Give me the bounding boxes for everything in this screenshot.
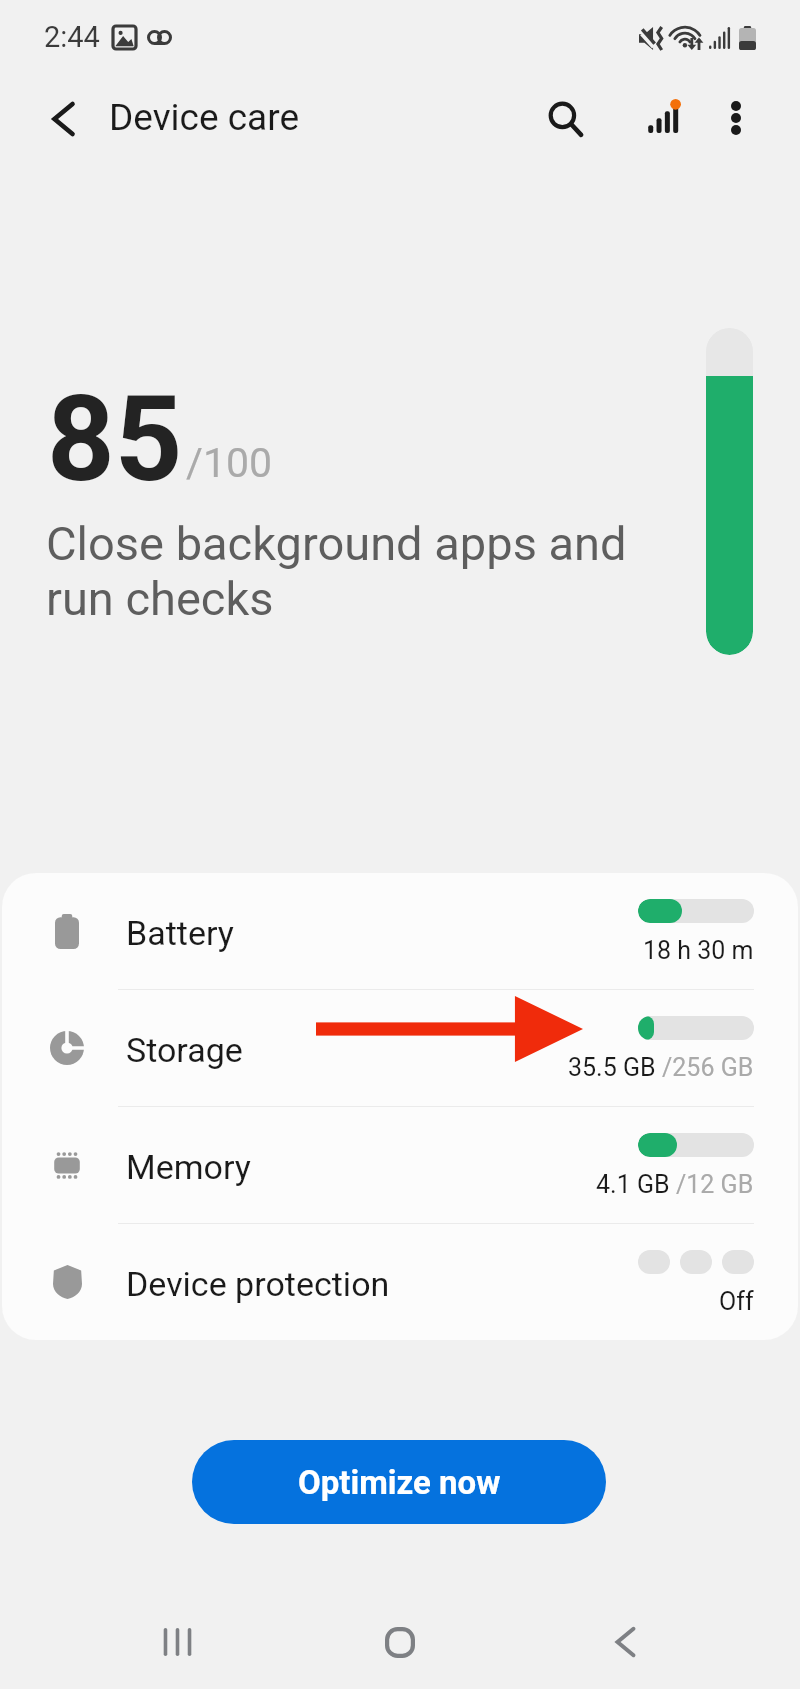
staticText: Storage: [126, 1030, 243, 1070]
button[interactable]: More options: [694, 76, 778, 160]
staticText: Device protection: [126, 1264, 390, 1304]
staticText: 35.5 GB: [568, 1053, 662, 1082]
staticText: 18 h 30 m: [643, 936, 754, 965]
button[interactable]: Recents: [123, 1588, 231, 1689]
button[interactable]: Memory: [2, 1107, 798, 1223]
staticText: 2:44: [44, 20, 100, 54]
staticText: 85: [47, 371, 183, 509]
button[interactable]: Home: [346, 1588, 454, 1689]
staticText: /100: [186, 439, 273, 487]
staticText: /256 GB: [662, 1053, 754, 1082]
staticText: Memory: [126, 1147, 251, 1187]
staticText: /12 GB: [676, 1170, 754, 1199]
button[interactable]: Device protection: [2, 1224, 798, 1340]
staticText: Device care: [109, 96, 300, 139]
staticText: Battery: [126, 913, 234, 953]
button[interactable]: Back: [571, 1588, 679, 1689]
button[interactable]: Battery: [2, 873, 798, 989]
staticText: Off: [719, 1287, 754, 1316]
button[interactable]: Storage: [2, 990, 798, 1106]
staticText: Close background apps and run checks: [46, 516, 627, 626]
button[interactable]: Navigate up: [21, 77, 105, 161]
button[interactable]: Optimize now: [192, 1440, 606, 1524]
staticText: Optimize now: [298, 1463, 501, 1502]
staticText: 4.1 GB: [596, 1170, 676, 1199]
button[interactable]: Network usage: [622, 76, 706, 160]
button[interactable]: Search: [524, 77, 608, 161]
